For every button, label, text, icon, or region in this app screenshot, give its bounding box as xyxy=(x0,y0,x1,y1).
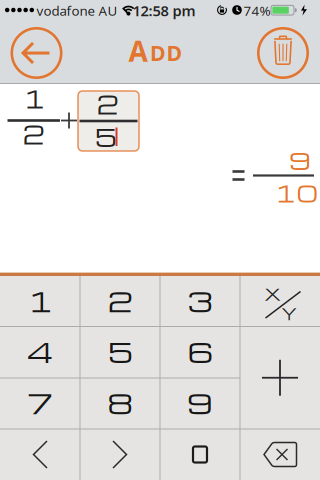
button[interactable]: 5 xyxy=(80,327,160,378)
button[interactable] xyxy=(240,326,320,429)
button[interactable]: 2 xyxy=(80,276,160,326)
staticText: Y xyxy=(281,303,297,324)
button[interactable]: 1 xyxy=(6,88,62,150)
button[interactable]: 4 xyxy=(0,327,80,378)
button[interactable]: 6 xyxy=(160,327,240,378)
staticText: 9 xyxy=(289,144,311,176)
button[interactable] xyxy=(0,429,80,480)
staticText: 12:58 pm xyxy=(132,1,195,20)
button[interactable]: 3 xyxy=(160,276,240,326)
button[interactable] xyxy=(80,429,160,480)
staticText: vodafone AU xyxy=(36,2,117,19)
staticText: D xyxy=(166,39,182,67)
staticText: X xyxy=(264,283,280,305)
staticText: 10 xyxy=(274,176,318,209)
button[interactable]: 2 xyxy=(78,91,139,151)
button[interactable]: X xyxy=(240,276,320,326)
button[interactable]: 9 xyxy=(160,378,240,429)
button[interactable] xyxy=(8,25,64,81)
button[interactable] xyxy=(160,429,240,480)
button[interactable]: 8 xyxy=(80,378,160,429)
staticText: 8 xyxy=(107,383,132,421)
staticText: 2 xyxy=(107,281,132,319)
button[interactable]: 7 xyxy=(0,378,80,429)
staticText: D xyxy=(150,39,166,67)
staticText: 5 xyxy=(94,120,116,153)
button[interactable] xyxy=(240,429,320,480)
button[interactable]: 1 xyxy=(0,276,80,326)
button[interactable] xyxy=(255,25,311,81)
staticText: A xyxy=(128,32,147,70)
staticText: 7 xyxy=(27,383,53,421)
staticText: 5 xyxy=(107,332,132,370)
staticText: 2 xyxy=(96,87,118,121)
staticText: 4 xyxy=(26,332,53,370)
staticText: 1 xyxy=(27,281,52,319)
staticText: 74% xyxy=(243,2,270,19)
staticText: 6 xyxy=(187,332,212,370)
staticText: 2 xyxy=(22,117,44,151)
staticText: 1 xyxy=(23,81,45,115)
staticText: 9 xyxy=(187,383,213,421)
staticText: 3 xyxy=(187,281,212,319)
